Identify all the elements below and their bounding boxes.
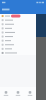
button[interactable] xyxy=(0,34,36,39)
button[interactable] xyxy=(0,47,36,51)
button[interactable] xyxy=(0,14,36,18)
button[interactable] xyxy=(0,51,36,55)
button[interactable] xyxy=(0,39,36,43)
button[interactable] xyxy=(0,30,36,34)
button[interactable] xyxy=(0,18,36,22)
button[interactable] xyxy=(0,22,36,26)
button[interactable] xyxy=(0,26,36,30)
button[interactable] xyxy=(0,43,36,47)
button[interactable]: Tab 1 xyxy=(0,87,12,100)
button[interactable]: Tab 3 xyxy=(24,87,36,100)
button[interactable]: Tab 2 xyxy=(12,87,24,100)
